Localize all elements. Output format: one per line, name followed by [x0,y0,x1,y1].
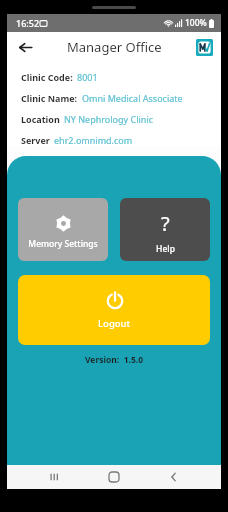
staticText: 16:52 [16,17,40,29]
button[interactable]: Logout [18,275,210,345]
staticText: NY Nephrology Clinic [64,113,154,125]
button[interactable]: ? [120,198,210,261]
staticText: Clinic Name: [21,92,78,104]
staticText: Manager Office [67,38,162,56]
staticText: ehr2.omnimd.com [54,134,133,146]
staticText: ? [161,210,170,237]
button[interactable]: Back [162,465,186,489]
button[interactable]: Recent apps [43,465,67,489]
staticText: Clinic Code: [21,71,73,83]
staticText: Location [21,113,60,125]
staticText: 100% [185,17,207,29]
staticText: Logout [98,317,131,330]
button[interactable]: Home [102,465,126,489]
staticText: Help [156,243,175,255]
staticText: Omni Medical Associate [82,92,183,104]
staticText: Server [21,134,50,146]
button[interactable]: App logo [195,38,213,56]
staticText: Version: 1.5.0 [18,354,210,366]
staticText: 8001 [77,71,98,83]
button[interactable]: Back [12,34,38,60]
button[interactable]: Memory Settings [18,198,108,261]
staticText: Memory Settings [28,238,98,250]
